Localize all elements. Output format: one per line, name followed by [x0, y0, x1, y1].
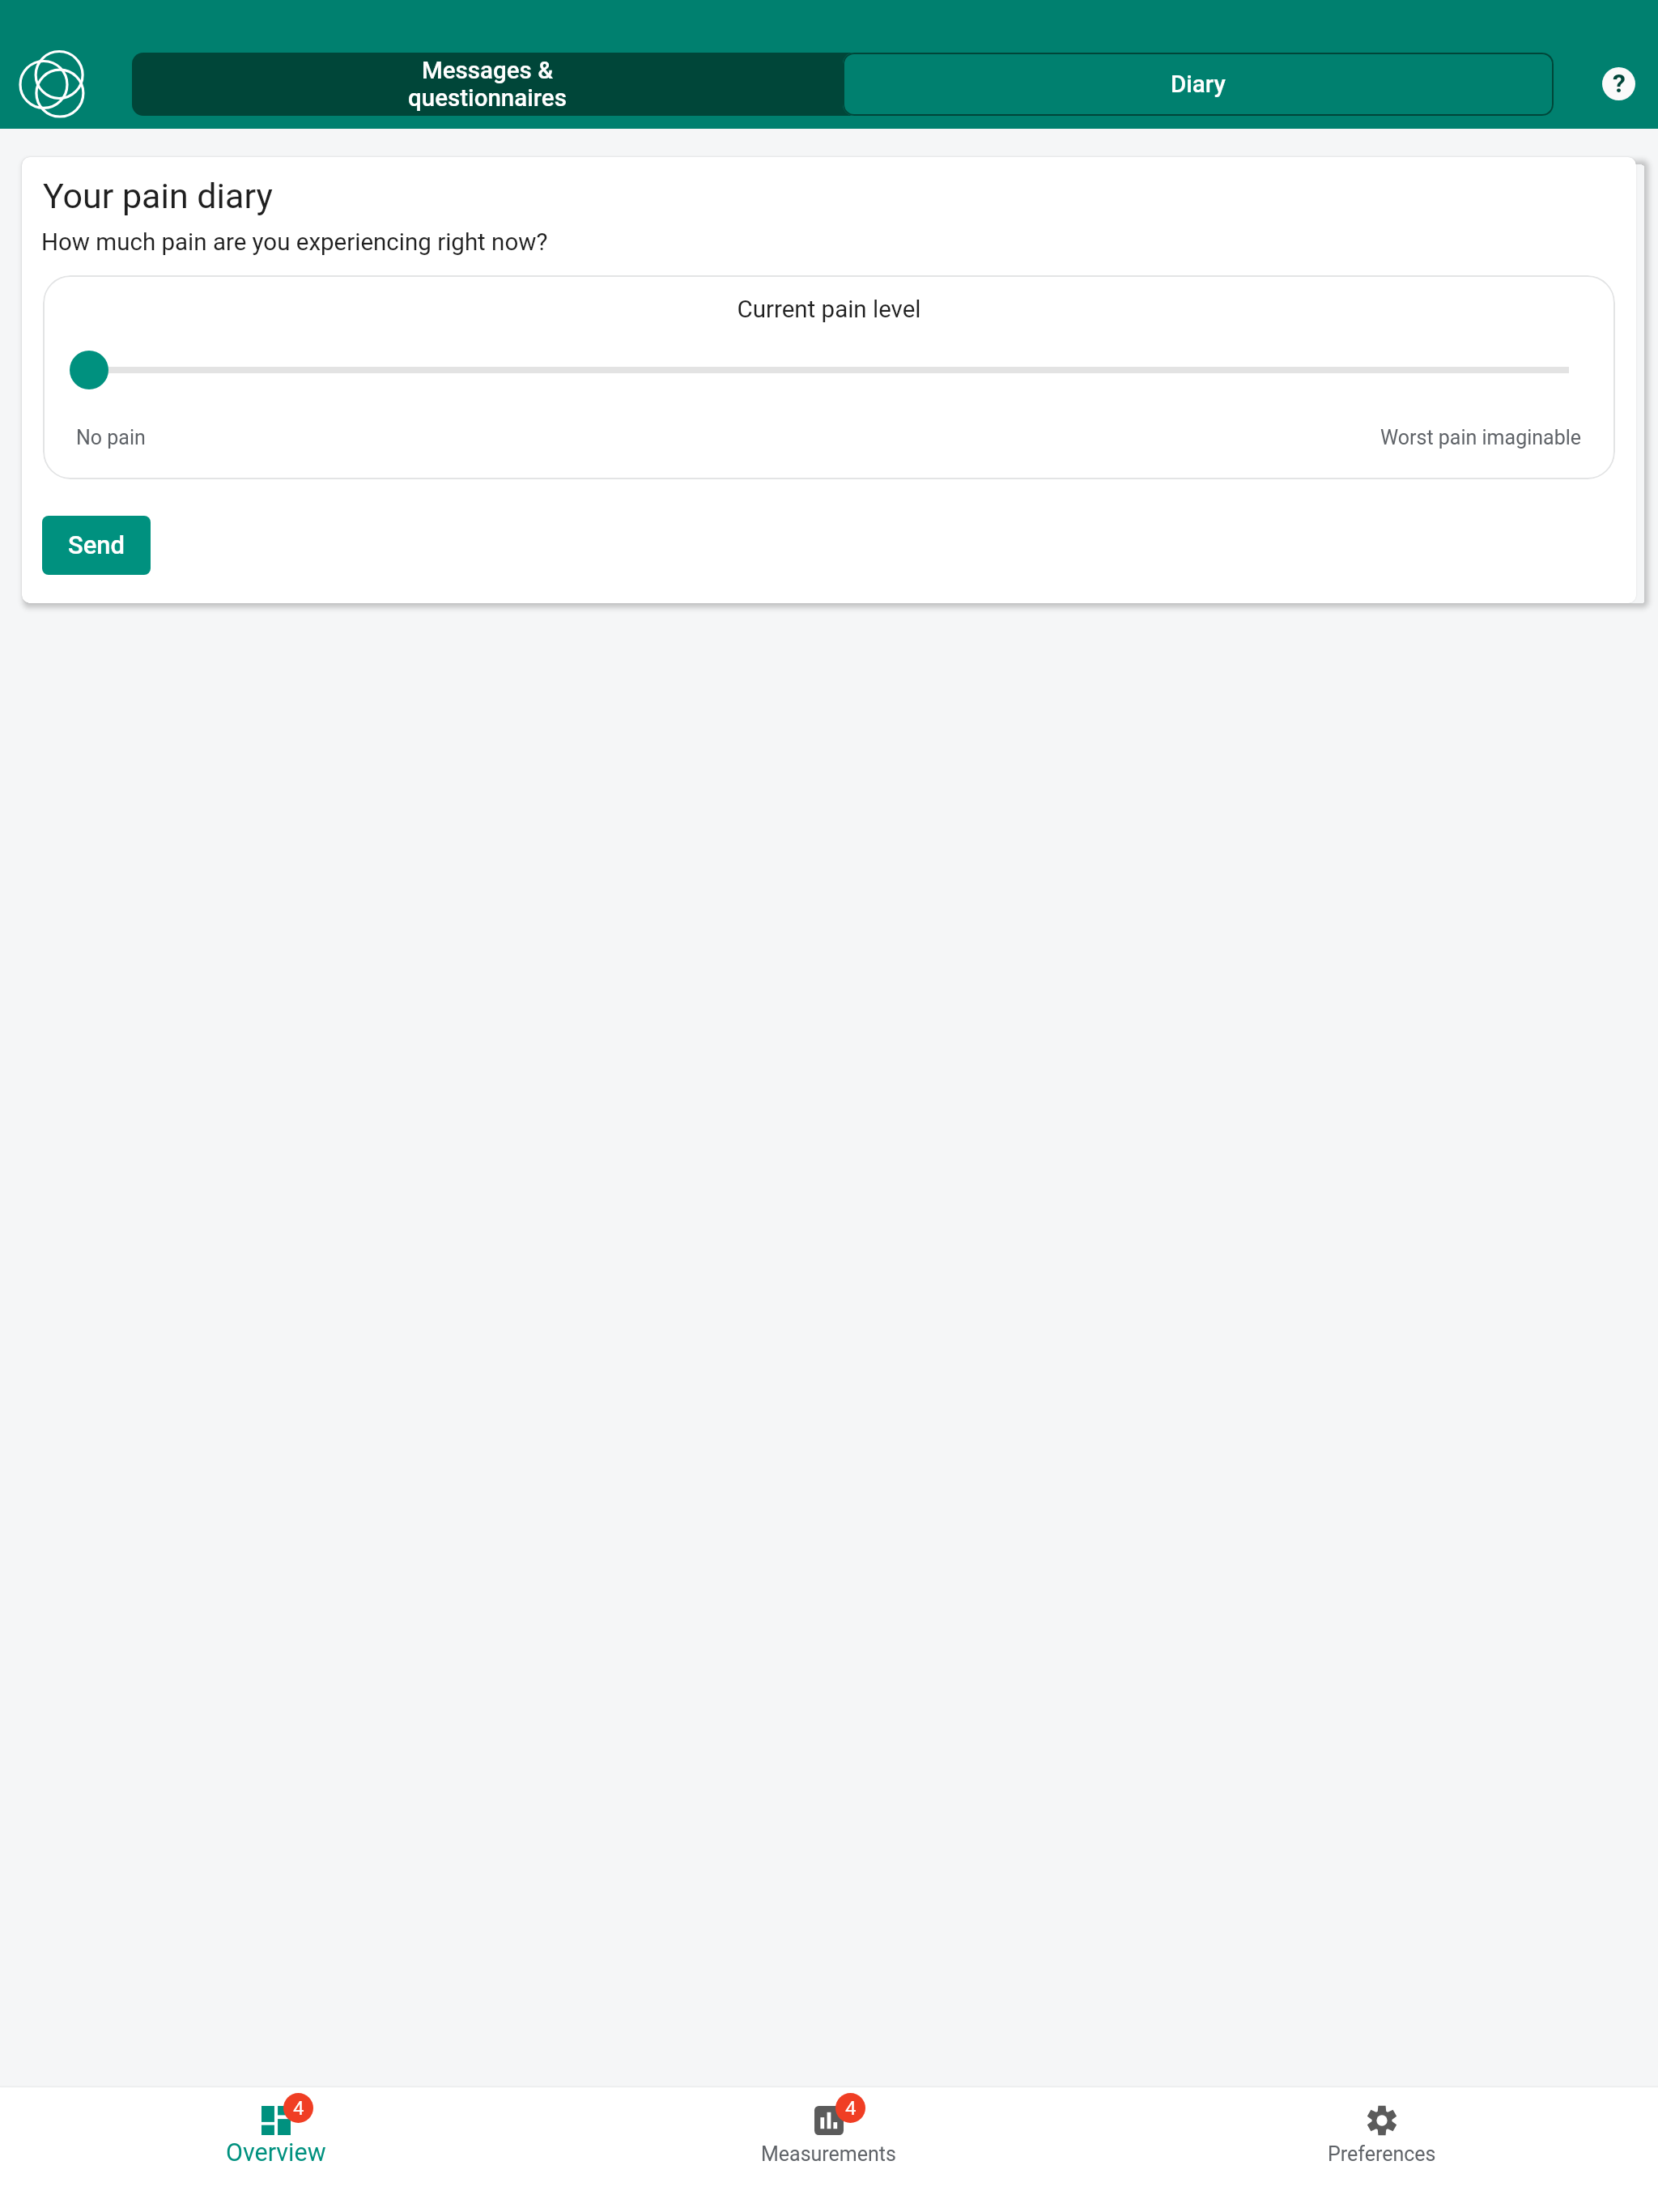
- staticText: ?: [1613, 68, 1626, 99]
- staticText: Diary: [1171, 70, 1226, 99]
- staticText: 4: [293, 2097, 304, 2120]
- staticText: Worst pain imaginable: [1380, 426, 1582, 449]
- staticText: No pain: [76, 426, 146, 449]
- staticText: How much pain are you experiencing right…: [41, 228, 548, 257]
- button[interactable]: Overview: [0, 2087, 552, 2212]
- button[interactable]: Send: [42, 516, 151, 575]
- staticText: Overview: [226, 2138, 326, 2167]
- button[interactable]: Help: [1602, 67, 1635, 100]
- button[interactable]: Preferences: [1105, 2087, 1658, 2212]
- button[interactable]: App logo: [20, 50, 88, 118]
- staticText: Current pain level: [43, 296, 1615, 324]
- button[interactable]: Messages & questionnaires: [132, 53, 843, 116]
- button[interactable]: Diary: [843, 53, 1554, 116]
- staticText: Your pain diary: [43, 176, 273, 216]
- button[interactable]: Measurements: [552, 2087, 1105, 2212]
- staticText: Preferences: [1328, 2142, 1436, 2166]
- staticText: Measurements: [761, 2142, 896, 2166]
- staticText: Send: [68, 530, 125, 559]
- staticText: 4: [845, 2097, 857, 2120]
- staticText: Messages & questionnaires: [408, 57, 567, 112]
